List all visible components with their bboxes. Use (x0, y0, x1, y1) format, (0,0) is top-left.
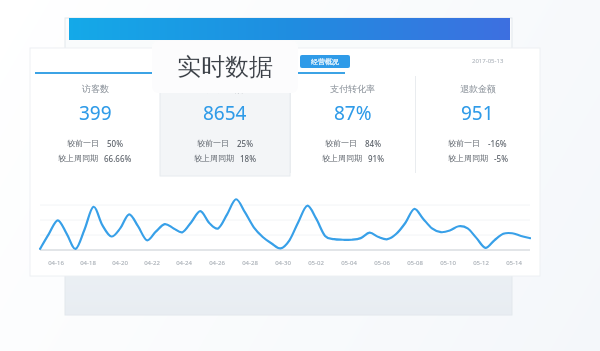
staticText: 访客数 (82, 83, 109, 94)
staticText: 04-20 (112, 259, 128, 267)
staticText: -16% (488, 138, 507, 149)
button[interactable]: 支付金额 (160, 73, 290, 183)
staticText: 较前一日 (325, 138, 357, 148)
staticText: 18% (240, 153, 256, 164)
staticText: 04-16 (48, 259, 64, 267)
staticText: 66.66% (104, 153, 132, 164)
staticText: 05-06 (374, 259, 390, 267)
staticText: -5% (494, 153, 508, 164)
staticText: 399 (79, 100, 112, 126)
staticText: 87% (334, 100, 372, 126)
staticText: 较上周同期 (58, 153, 98, 163)
staticText: 05-14 (506, 259, 522, 267)
staticText: 2017-05-13 (472, 57, 504, 65)
staticText: 经营概况 (311, 57, 339, 66)
staticText: 实时数据 (177, 52, 273, 82)
staticText: 较上周同期 (448, 153, 488, 163)
staticText: 04-18 (80, 259, 96, 267)
staticText: 05-02 (308, 259, 324, 267)
staticText: 04-28 (242, 259, 258, 267)
staticText: 支付转化率 (330, 83, 375, 94)
staticText: 05-12 (473, 259, 489, 267)
button[interactable]: 实时数据 (152, 41, 298, 93)
staticText: 较前一日 (448, 138, 480, 148)
staticText: 04-30 (275, 259, 291, 267)
staticText: 较前一日 (67, 138, 99, 148)
staticText: 04-22 (144, 259, 160, 267)
staticText: 退款金额 (460, 83, 496, 94)
button[interactable]: 经营概况 (300, 55, 350, 68)
staticText: 8654 (203, 100, 247, 126)
staticText: 25% (237, 138, 253, 149)
staticText: 951 (461, 100, 494, 126)
staticText: 较上周同期 (322, 153, 362, 163)
staticText: 05-04 (341, 259, 357, 267)
staticText: 较上周同期 (194, 153, 234, 163)
staticText: 05-08 (407, 259, 423, 267)
button[interactable]: 支付转化率 (290, 73, 415, 183)
staticText: 04-24 (176, 259, 192, 267)
button[interactable]: 访客数 (30, 73, 160, 183)
staticText: 50% (107, 138, 123, 149)
staticText: 84% (365, 138, 381, 149)
staticText: 05-10 (440, 259, 456, 267)
staticText: 91% (368, 153, 384, 164)
button[interactable]: 退款金额 (415, 73, 540, 183)
staticText: 04-26 (209, 259, 225, 267)
staticText: 支付金额 (207, 83, 243, 94)
staticText: 较前一日 (197, 138, 229, 148)
